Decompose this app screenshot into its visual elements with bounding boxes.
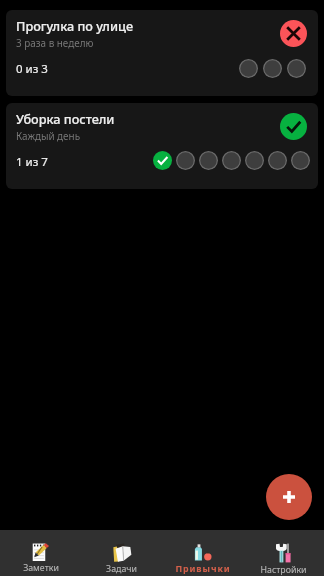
button[interactable]: День 2	[176, 151, 195, 170]
button[interactable]: День 1	[153, 151, 172, 170]
button[interactable]: День 2	[263, 59, 282, 78]
staticText: Заметки	[23, 562, 59, 574]
staticText: Привычки	[175, 563, 231, 575]
button[interactable]: Настройки	[243, 530, 324, 576]
staticText: 0 из 3	[16, 61, 48, 77]
button[interactable]: Добавить привычку	[266, 474, 312, 520]
button[interactable]: Отметить не выполнено	[280, 20, 307, 47]
button[interactable]: День 3	[287, 59, 306, 78]
staticText: 1 из 7	[16, 154, 48, 170]
button[interactable]: Заметки	[0, 530, 81, 576]
button[interactable]: День 6	[268, 151, 287, 170]
button[interactable]: Отметить выполнено	[280, 113, 307, 140]
staticText: Уборка постели	[16, 110, 115, 127]
button[interactable]: День 4	[222, 151, 241, 170]
button[interactable]: День 7	[291, 151, 310, 170]
button[interactable]: День 5	[245, 151, 264, 170]
staticText: Задачи	[106, 563, 137, 575]
staticText: Каждый день	[16, 129, 81, 142]
button[interactable]: Прогулка по улице	[6, 10, 318, 96]
button[interactable]: Уборка постели	[6, 103, 318, 189]
button[interactable]: День 3	[199, 151, 218, 170]
staticText: 3 раза в неделю	[16, 36, 94, 49]
staticText: Настройки	[260, 564, 307, 576]
button[interactable]: Привычки	[162, 530, 243, 576]
button[interactable]: День 1	[239, 59, 258, 78]
button[interactable]: Задачи	[81, 530, 162, 576]
staticText: Прогулка по улице	[16, 17, 134, 34]
